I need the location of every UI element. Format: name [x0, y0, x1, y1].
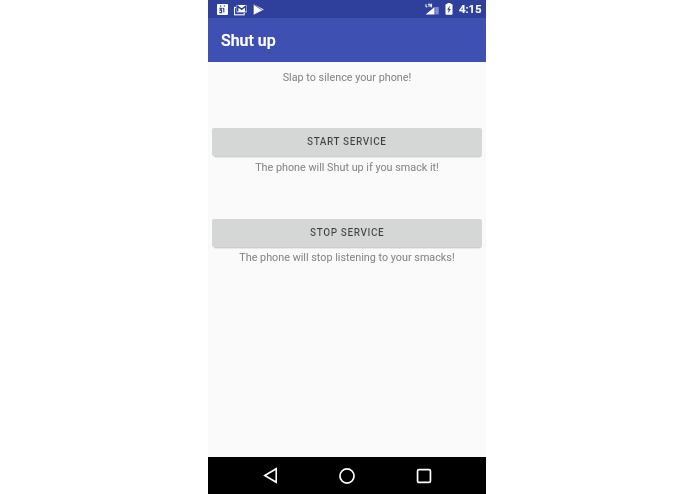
- staticText: Shut up: [221, 31, 276, 50]
- staticText: STOP SERVICE: [310, 227, 385, 239]
- button[interactable]: STOP SERVICE: [212, 219, 482, 247]
- button[interactable]: Home: [325, 457, 369, 494]
- button[interactable]: START SERVICE: [212, 128, 482, 156]
- staticText: 4:15: [459, 2, 482, 15]
- button[interactable]: Recents: [402, 457, 446, 494]
- staticText: The phone will Shut up if you smack it!: [208, 161, 486, 174]
- staticText: The phone will stop listening to your sm…: [208, 251, 486, 264]
- staticText: Slap to silence your phone!: [208, 71, 486, 84]
- button[interactable]: Back: [248, 457, 292, 494]
- staticText: START SERVICE: [307, 136, 387, 148]
